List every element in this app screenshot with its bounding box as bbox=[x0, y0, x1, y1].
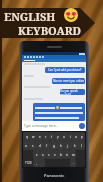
button[interactable] bbox=[33, 103, 85, 121]
button[interactable]: Toolbar action bbox=[30, 56, 32, 58]
staticText: y bbox=[57, 135, 59, 139]
button[interactable]: Do you speak english? bbox=[60, 89, 85, 95]
staticText: , bbox=[36, 161, 37, 165]
staticText: q bbox=[26, 135, 28, 139]
button[interactable]: Can I just add you driver? bbox=[45, 67, 85, 73]
button[interactable]: x bbox=[40, 150, 46, 159]
button[interactable]: c bbox=[46, 150, 52, 159]
staticText: h bbox=[60, 144, 62, 148]
button[interactable]: e bbox=[37, 132, 43, 141]
button[interactable]: Toolbar action bbox=[39, 56, 41, 58]
button[interactable]: . bbox=[70, 159, 76, 167]
button[interactable]: j bbox=[64, 141, 71, 150]
button[interactable]: s bbox=[29, 141, 36, 150]
staticText: b bbox=[60, 153, 62, 157]
staticText: v bbox=[54, 153, 56, 157]
button[interactable]: m bbox=[70, 150, 76, 159]
button[interactable]: r bbox=[43, 132, 49, 141]
staticText: Type a message here... bbox=[24, 124, 59, 128]
staticText: m bbox=[72, 153, 75, 157]
button[interactable]: u bbox=[61, 132, 67, 141]
button[interactable]: a bbox=[23, 141, 29, 150]
staticText: a bbox=[25, 144, 27, 148]
button[interactable]: v bbox=[52, 150, 58, 159]
button[interactable]: Toolbar action bbox=[36, 56, 38, 58]
button[interactable]: w bbox=[30, 132, 37, 141]
button[interactable]: n bbox=[64, 150, 70, 159]
button[interactable]: h bbox=[57, 141, 64, 150]
button[interactable]: o bbox=[73, 132, 79, 141]
staticText: . bbox=[73, 161, 74, 165]
staticText: Can I just add you driver? bbox=[48, 68, 82, 72]
button[interactable]: f bbox=[43, 141, 50, 150]
staticText: u bbox=[63, 135, 65, 139]
staticText: x bbox=[42, 153, 44, 157]
staticText: n bbox=[66, 153, 68, 157]
staticText: ENGLISH bbox=[4, 9, 56, 24]
staticText: r bbox=[45, 135, 47, 139]
staticText: t bbox=[51, 135, 53, 139]
button[interactable]: p bbox=[79, 132, 85, 141]
staticText: z bbox=[36, 153, 38, 157]
staticText: KEYBOARD bbox=[18, 23, 82, 38]
button[interactable]: b bbox=[58, 150, 64, 159]
button[interactable]: Toolbar action bbox=[24, 56, 26, 58]
button[interactable]: y bbox=[55, 132, 61, 141]
staticText: Nice to meet you online bbox=[53, 79, 85, 83]
staticText: l bbox=[81, 144, 82, 148]
button[interactable]: g bbox=[50, 141, 57, 150]
button[interactable]: z bbox=[33, 150, 40, 159]
button[interactable]: k bbox=[71, 141, 78, 150]
staticText: w bbox=[32, 135, 35, 139]
button[interactable]: d bbox=[36, 141, 43, 150]
button[interactable]: l bbox=[78, 141, 85, 150]
staticText: s bbox=[32, 144, 34, 148]
staticText: g bbox=[53, 144, 55, 148]
staticText: f bbox=[46, 144, 48, 148]
button[interactable]: Toolbar action bbox=[27, 56, 29, 58]
staticText: d bbox=[39, 144, 41, 148]
staticText: c bbox=[48, 153, 50, 157]
staticText: Do you speak english? bbox=[60, 89, 85, 95]
button[interactable]: ?123 bbox=[23, 159, 33, 167]
button[interactable]: t bbox=[49, 132, 55, 141]
staticText: ?123 bbox=[25, 161, 32, 165]
button[interactable]: Send bbox=[79, 123, 85, 129]
staticText: j bbox=[67, 144, 68, 148]
button[interactable]: Toolbar action bbox=[42, 56, 44, 58]
button[interactable]: q bbox=[23, 132, 30, 141]
staticText: p bbox=[81, 135, 83, 139]
button[interactable]: , bbox=[33, 159, 39, 167]
button[interactable]: Toolbar action bbox=[33, 56, 35, 58]
staticText: Panasonic bbox=[44, 173, 65, 178]
staticText: e bbox=[39, 135, 41, 139]
button[interactable]: i bbox=[67, 132, 73, 141]
button[interactable]: Nice to meet you online bbox=[52, 78, 85, 84]
staticText: i bbox=[70, 135, 71, 139]
staticText: o bbox=[75, 135, 77, 139]
staticText: k bbox=[74, 144, 76, 148]
